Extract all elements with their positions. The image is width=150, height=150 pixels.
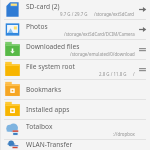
staticText: SD-card (2) xyxy=(26,2,60,11)
button[interactable]: File system root xyxy=(0,60,150,79)
staticText: Installed apps xyxy=(26,105,70,114)
staticText: Bookmarks xyxy=(26,85,62,94)
button[interactable]: Photos xyxy=(0,20,150,39)
staticText: 9.7 G / 29.7 G xyxy=(60,11,88,17)
button[interactable]: WLAN-Transfer xyxy=(0,140,150,150)
button[interactable]: Totalbox xyxy=(0,120,150,139)
staticText: Downloaded files xyxy=(26,42,80,51)
staticText: /storage/emulated/0/download xyxy=(70,51,135,57)
staticText: Photos xyxy=(26,22,48,31)
button[interactable]: Open SD card xyxy=(138,5,147,14)
staticText: / xyxy=(133,71,135,77)
button[interactable]: Reorder Downloaded files xyxy=(138,45,147,54)
staticText: Totalbox xyxy=(26,122,53,131)
button[interactable]: SD-card (2) xyxy=(0,0,150,19)
staticText: /storage/extSdCard xyxy=(94,11,135,17)
staticText: /storage/extSdCard/DCIM/Camera xyxy=(64,31,135,37)
staticText: 2.8 G / 11.8 G xyxy=(99,71,127,77)
button[interactable]: Open Photos xyxy=(138,25,147,34)
button[interactable]: Reorder File system root xyxy=(138,65,147,74)
staticText: WLAN-Transfer xyxy=(26,140,73,149)
staticText: File system root xyxy=(26,62,75,71)
button[interactable]: Installed apps xyxy=(0,100,150,119)
staticText: ://dropbox xyxy=(113,131,135,137)
button[interactable]: Downloaded files xyxy=(0,40,150,59)
button[interactable]: Bookmarks xyxy=(0,80,150,99)
